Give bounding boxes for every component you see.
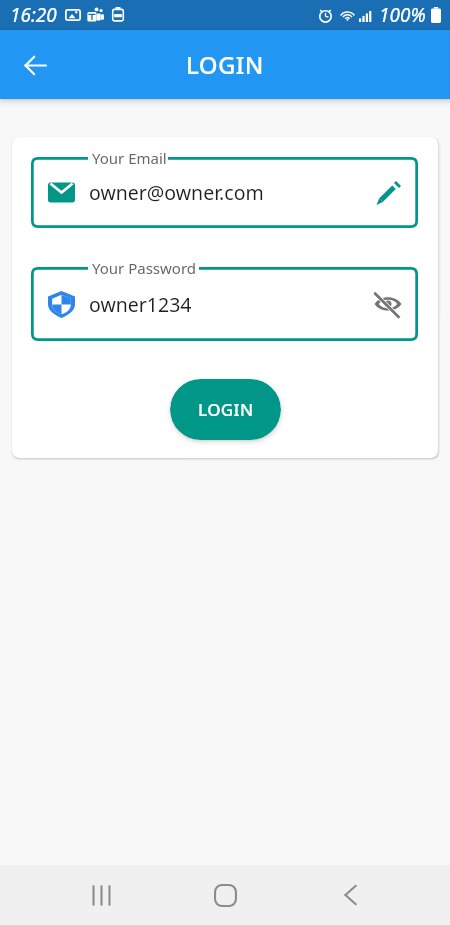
button[interactable]: LOGIN bbox=[170, 379, 281, 440]
staticText: Your Password bbox=[92, 258, 197, 278]
staticText: Your Email bbox=[92, 148, 167, 168]
button[interactable]: Recent apps bbox=[77, 871, 125, 919]
button[interactable]: Back bbox=[326, 871, 374, 919]
button[interactable]: Back bbox=[11, 41, 59, 89]
button[interactable]: Home bbox=[201, 871, 249, 919]
staticText: 100% bbox=[379, 2, 426, 28]
button[interactable]: Show password bbox=[370, 286, 406, 322]
staticText: 16:20 bbox=[10, 2, 57, 28]
staticText: owner1234 bbox=[89, 291, 370, 318]
button[interactable]: Edit email bbox=[370, 175, 406, 211]
staticText: LOGIN bbox=[186, 48, 264, 81]
staticText: LOGIN bbox=[198, 398, 254, 421]
staticText: owner@owner.com bbox=[89, 179, 370, 206]
